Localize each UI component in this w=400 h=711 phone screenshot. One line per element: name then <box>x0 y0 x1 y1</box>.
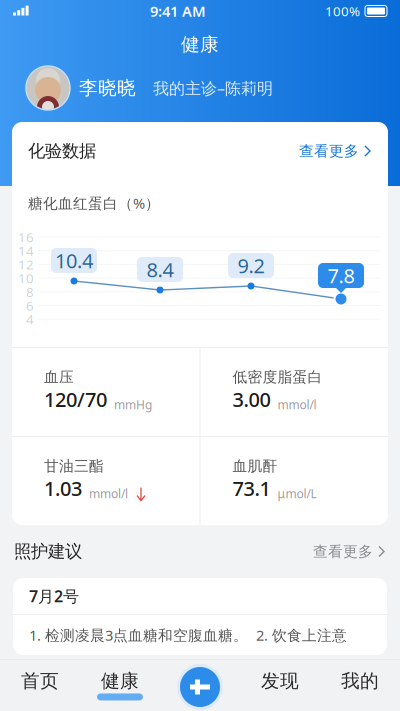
button[interactable]: Add <box>177 664 223 710</box>
button[interactable]: 健康 <box>80 659 160 711</box>
staticText: 甘油三酯 <box>44 457 104 475</box>
staticText: 7月2号 <box>29 585 79 607</box>
button[interactable]: 我的 <box>320 659 400 711</box>
button[interactable]: 照护建议 <box>0 525 400 578</box>
staticText: 健康 <box>101 669 139 692</box>
button[interactable]: 化验数据 <box>12 122 388 180</box>
staticText: 化验数据 <box>28 140 96 162</box>
staticText: 10 <box>18 269 34 287</box>
button[interactable]: 首页 <box>0 659 80 711</box>
staticText: mmol/l <box>277 397 316 412</box>
staticText: mmHg <box>114 397 152 412</box>
staticText: 14 <box>18 242 34 259</box>
staticText: 健康 <box>181 33 219 56</box>
staticText: 9.2 <box>237 252 264 279</box>
staticText: 6 <box>26 297 34 314</box>
staticText: 我的主诊–陈莉明 <box>153 77 273 99</box>
staticText: 糖化血红蛋白（%） <box>28 193 160 213</box>
staticText: 血肌酐 <box>232 457 277 475</box>
staticText: 1.03 <box>44 475 82 502</box>
staticText: 8.4 <box>146 256 173 283</box>
staticText: 100% <box>325 2 360 20</box>
staticText: 16 <box>18 228 34 246</box>
staticText: μmol/L <box>277 486 316 501</box>
staticText: 查看更多 <box>299 142 359 160</box>
staticText: 12 <box>18 255 34 273</box>
staticText: 9:41 AM <box>150 1 206 21</box>
staticText: mmol/l <box>89 486 128 501</box>
staticText: 3.00 <box>232 386 270 413</box>
staticText: 10.4 <box>55 247 93 274</box>
staticText: 4 <box>26 310 34 328</box>
staticText: 1. 检测凌晨3点血糖和空腹血糖。 2. 饮食上注意 <box>29 625 347 645</box>
staticText: 查看更多 <box>313 542 373 560</box>
staticText: 我的 <box>341 669 379 692</box>
staticText: 照护建议 <box>14 541 82 562</box>
staticText: 首页 <box>21 669 59 692</box>
staticText: 发现 <box>261 669 299 692</box>
staticText: 73.1 <box>232 475 270 502</box>
staticText: 李晓晓 <box>79 76 136 99</box>
staticText: 120/70 <box>44 386 107 413</box>
staticText: 8 <box>26 283 34 301</box>
staticText: 7.8 <box>327 262 354 289</box>
button[interactable]: 发现 <box>240 659 320 711</box>
staticText: 血压 <box>44 368 74 386</box>
staticText: 低密度脂蛋白 <box>232 368 322 386</box>
